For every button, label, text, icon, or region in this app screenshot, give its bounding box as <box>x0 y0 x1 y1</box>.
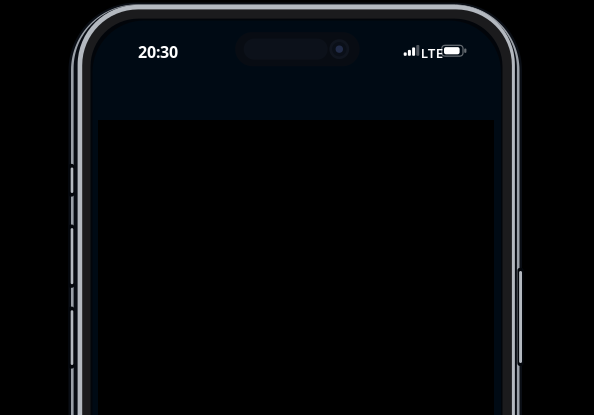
staticText: 20:30 <box>138 41 178 62</box>
staticText: LTE <box>421 44 443 62</box>
